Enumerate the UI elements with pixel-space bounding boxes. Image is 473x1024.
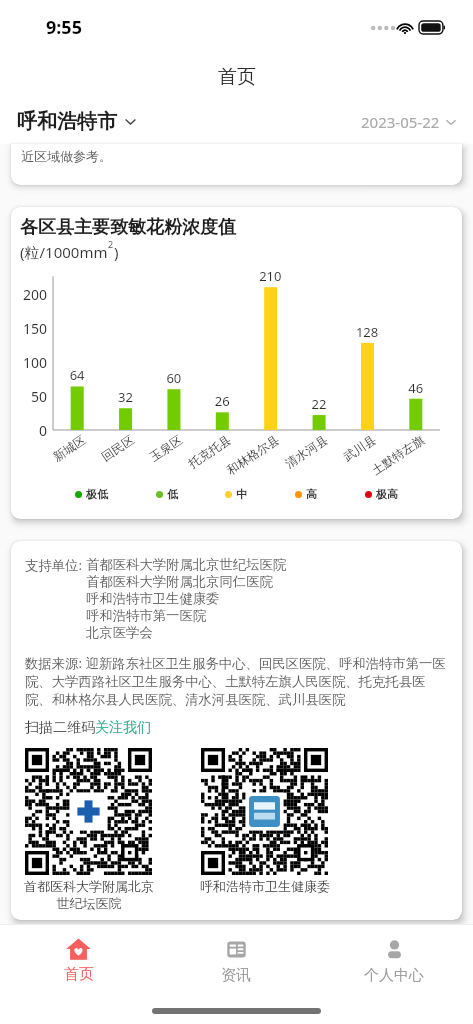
staticText: 首都医科大学附属北京 世纪坛医院 — [24, 878, 154, 912]
staticText: 关注我们 — [95, 719, 151, 737]
staticText: 极低 — [86, 487, 108, 501]
staticText: 呼和浩特市卫生健康委 — [200, 878, 330, 894]
button[interactable]: 2023-05-22 — [361, 112, 457, 132]
staticText: 支持单位: — [25, 556, 82, 574]
button[interactable]: 呼和浩特市 — [17, 109, 137, 134]
staticText: 扫描二维码 — [25, 719, 95, 737]
button[interactable]: 个人中心 — [315, 925, 473, 1001]
staticText: 高 — [306, 487, 317, 501]
staticText: 首页 — [218, 65, 256, 89]
staticText: 呼和浩特市第一医院 — [86, 607, 207, 624]
button[interactable]: 二维码 — [201, 748, 328, 875]
staticText: 注：受监测数据限制，目前查询还不能覆盖所有区域，若无目标区域可选邻近区域做参考。 — [21, 144, 452, 165]
staticText: 2 — [108, 238, 114, 250]
button[interactable]: 资讯 — [157, 925, 315, 1001]
staticText: 极高 — [376, 487, 398, 501]
button[interactable]: 首页 — [0, 925, 157, 1001]
staticText: (粒/1000mm — [20, 242, 108, 262]
staticText: 首页 — [64, 965, 94, 984]
staticText: 资讯 — [221, 966, 251, 985]
staticText: 北京医学会 — [86, 624, 153, 641]
button[interactable]: 扫描二维码 — [25, 719, 151, 737]
staticText: 中 — [236, 487, 247, 501]
staticText: 个人中心 — [364, 966, 424, 985]
button[interactable]: 二维码 — [25, 748, 152, 875]
staticText: 低 — [167, 487, 178, 501]
staticText: 数据来源: 迎新路东社区卫生服务中心、回民区医院、呼和浩特市第一医院、大学西路社… — [25, 654, 449, 708]
staticText: 各区县主要致敏花粉浓度值 — [20, 216, 236, 239]
staticText: 首都医科大学附属北京同仁医院 — [86, 573, 273, 590]
staticText: 9:55 — [46, 15, 82, 40]
staticText: 首都医科大学附属北京世纪坛医院 — [86, 556, 287, 573]
staticText: 呼和浩特市卫生健康委 — [86, 590, 220, 607]
staticText: ) — [114, 242, 119, 262]
staticText: 2023-05-22 — [361, 112, 440, 132]
staticText: 呼和浩特市 — [17, 109, 117, 134]
